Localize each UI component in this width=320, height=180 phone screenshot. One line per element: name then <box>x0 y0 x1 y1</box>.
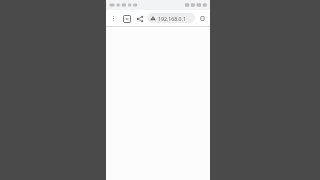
button[interactable]: More options <box>108 13 119 24</box>
staticText: 192.168.0.1 <box>158 15 186 22</box>
button[interactable]: Share <box>134 13 145 24</box>
button[interactable]: 192.168.0.1 <box>147 13 195 23</box>
button[interactable]: Reload page <box>197 13 208 24</box>
button[interactable]: Switch tabs <box>121 13 132 24</box>
